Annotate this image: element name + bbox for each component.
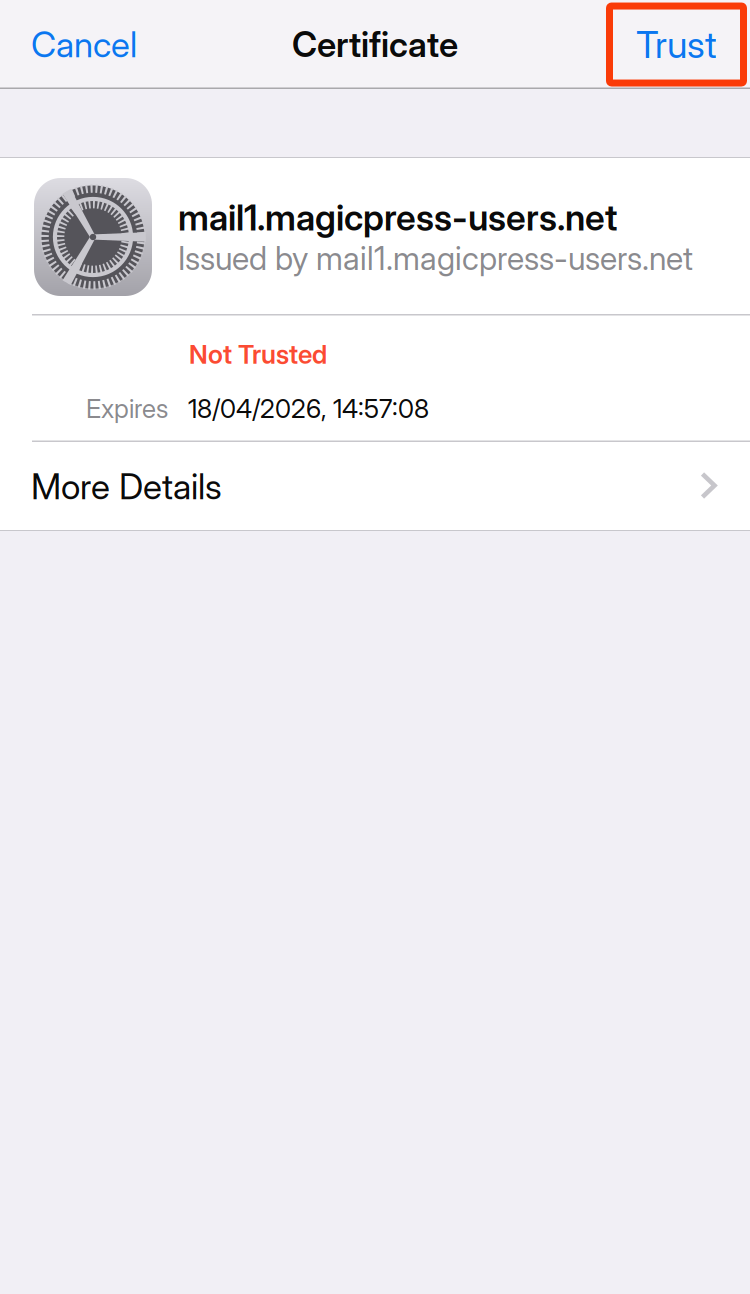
staticText: Not Trusted bbox=[189, 338, 327, 370]
staticText: Expires bbox=[86, 393, 168, 424]
staticText: Certificate bbox=[292, 23, 458, 65]
button[interactable]: Trust bbox=[606, 2, 750, 86]
button[interactable]: More Details bbox=[0, 442, 750, 531]
staticText: Issued by mail1.magicpress-users.net bbox=[178, 239, 693, 278]
staticText: 18/04/2026, 14:57:08 bbox=[188, 393, 429, 424]
staticText: Cancel bbox=[31, 23, 137, 66]
staticText: More Details bbox=[31, 465, 222, 508]
button[interactable]: Cancel bbox=[0, 0, 161, 89]
staticText: Trust bbox=[636, 22, 717, 67]
staticText: mail1.magicpress-users.net bbox=[178, 196, 617, 239]
